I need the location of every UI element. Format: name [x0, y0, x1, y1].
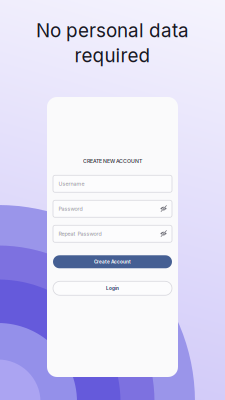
staticText: Username	[58, 181, 84, 187]
staticText: Login	[106, 285, 119, 291]
staticText: Create Account	[94, 259, 131, 265]
button[interactable]: Login	[53, 281, 172, 295]
staticText: Password	[58, 206, 82, 212]
button[interactable]: Password	[53, 200, 172, 217]
staticText: Repeat Password	[58, 231, 101, 237]
staticText: CREATE NEW ACCOUNT	[83, 158, 142, 164]
staticText: No personal data	[36, 19, 189, 42]
staticText: required	[74, 44, 150, 67]
button[interactable]: Username	[53, 175, 172, 192]
button[interactable]: Create Account	[53, 255, 172, 268]
button[interactable]: Repeat Password	[53, 225, 172, 242]
